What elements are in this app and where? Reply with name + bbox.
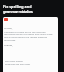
staticText: Hi Alex, <box>4 26 13 29</box>
staticText: Download the app today <box>5 63 31 66</box>
staticText: Thanks, <box>4 43 13 46</box>
staticText: I wanted to follow up on the draft we di… <box>4 30 56 42</box>
staticText: Sent from mobile <box>5 60 23 63</box>
staticText: grammar mistakes <box>3 9 33 14</box>
staticText: Fix spelling and <box>3 4 32 9</box>
